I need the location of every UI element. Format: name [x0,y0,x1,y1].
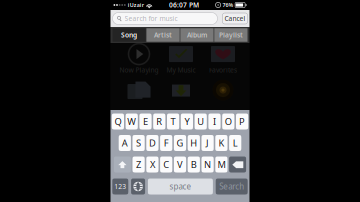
button[interactable]: Now Playing [118,44,160,74]
staticText: A [122,137,128,149]
button[interactable]: H [188,135,200,151]
button[interactable]: S [132,135,145,151]
staticText: My Music [166,66,195,74]
staticText: Search [219,181,244,192]
staticText: H [190,137,197,149]
button[interactable] [118,80,160,110]
staticText: L [233,137,238,149]
button[interactable]: G [174,135,186,151]
button[interactable]: Song [112,28,146,42]
staticText: Favorites [209,66,237,74]
button[interactable]: My Music [160,44,202,74]
button[interactable]: Album [180,28,213,42]
staticText: P [239,115,245,128]
button[interactable]: 123 [112,178,128,194]
button[interactable]: O [222,113,234,129]
staticText: R [156,115,162,128]
staticText: O [225,115,232,128]
button[interactable]: K [215,135,227,151]
staticText: J [206,137,209,149]
staticText: Playlist [219,31,243,39]
button[interactable]: Cancel [222,13,247,24]
button[interactable]: T [167,113,179,129]
staticText: Z [136,158,141,171]
button[interactable]: L [229,135,241,151]
button[interactable]: Y [181,113,193,129]
button[interactable] [160,80,202,110]
button[interactable]: Shift [114,156,131,172]
staticText: X [150,158,155,171]
staticText: Song [121,31,137,39]
button[interactable]: Q [112,113,124,129]
staticText: F [164,137,169,149]
staticText: S [136,137,141,149]
staticText: V [177,158,183,171]
staticText: C [163,158,169,171]
staticText: M [217,158,225,171]
staticText: I [213,115,216,128]
button[interactable]: J [201,135,214,151]
staticText: 76% [223,1,234,9]
button[interactable]: B [188,156,200,172]
button[interactable]: Favorites [202,44,244,74]
staticText: U [197,115,204,128]
button[interactable]: F [160,135,172,151]
button[interactable]: R [153,113,165,129]
button[interactable]: X [146,156,158,172]
button[interactable]: I [208,113,221,129]
staticText: N [204,158,211,171]
staticText: Y [184,115,189,128]
button[interactable]: Playlist [214,28,247,42]
button[interactable]: Switch keyboard [131,178,145,194]
staticText: D [149,137,156,149]
button[interactable]: P [236,113,248,129]
staticText: Artist [154,31,172,39]
button[interactable]: N [201,156,214,172]
staticText: Search for music [124,14,177,23]
button[interactable]: U [195,113,207,129]
button[interactable]: V [174,156,186,172]
button[interactable]: Artist [146,28,180,42]
staticText: Cancel [224,14,245,23]
staticText: iUzair [128,1,144,9]
staticText: G [176,137,183,149]
button[interactable] [202,80,244,110]
staticText: Q [114,115,121,128]
button[interactable]: Z [132,156,145,172]
staticText: T [171,115,176,128]
staticText: Album [187,31,207,39]
staticText: B [191,158,197,171]
staticText: space [169,181,191,192]
staticText: K [218,137,224,149]
button[interactable]: E [139,113,152,129]
staticText: Now Playing [119,66,158,74]
staticText: 123 [114,182,126,191]
button[interactable]: C [160,156,172,172]
staticText: E [143,115,148,128]
button[interactable]: M [215,156,227,172]
button[interactable]: Search [216,178,248,194]
button[interactable]: space [148,178,213,194]
button[interactable]: A [119,135,131,151]
staticText: 06:07 PM [169,1,199,9]
button[interactable]: Delete [229,156,246,172]
button[interactable]: W [126,113,138,129]
staticText: W [127,115,136,128]
button[interactable]: D [146,135,158,151]
